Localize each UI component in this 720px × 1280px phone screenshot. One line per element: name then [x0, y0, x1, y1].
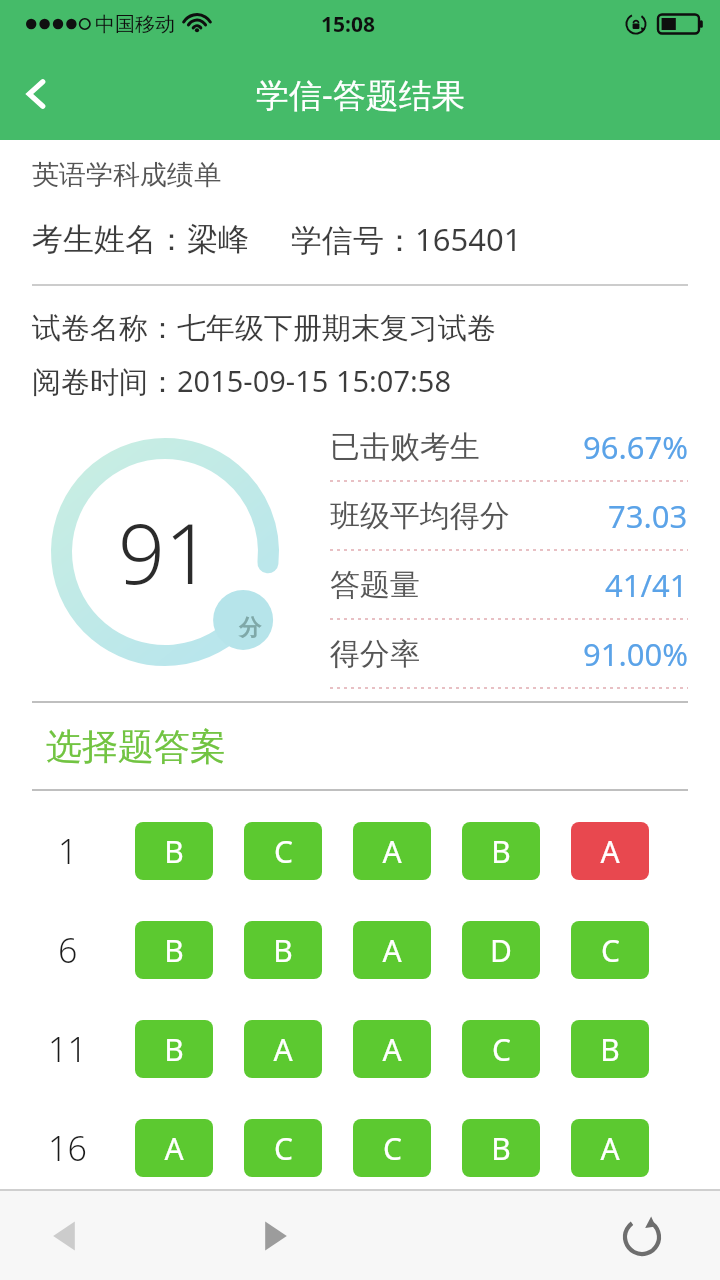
staticText: 选择题答案	[46, 724, 226, 769]
staticText: B	[164, 831, 184, 872]
staticText: A	[273, 1029, 293, 1070]
staticText: 试卷名称：七年级下册期末复习试卷	[32, 310, 496, 347]
staticText: 学信-答题结果	[256, 72, 465, 117]
staticText: 11	[48, 1026, 87, 1072]
staticText: A	[382, 930, 402, 971]
staticText: D	[490, 930, 512, 971]
staticText: 考生姓名：梁峰	[32, 220, 249, 259]
staticText: B	[600, 1029, 620, 1070]
staticText: 班级平均得分	[330, 497, 510, 535]
button[interactable]: A	[353, 822, 431, 880]
staticText: 96.67%	[583, 426, 688, 468]
button[interactable]: C	[462, 1020, 540, 1078]
button[interactable]: C	[571, 921, 649, 979]
staticText: A	[600, 831, 620, 872]
button[interactable]: A	[244, 1020, 322, 1078]
staticText: B	[491, 831, 511, 872]
staticText: A	[600, 1128, 620, 1169]
button[interactable]: C	[244, 822, 322, 880]
staticText: C	[274, 1128, 293, 1169]
staticText: 分	[239, 614, 261, 642]
staticText: 学信号：165401	[291, 218, 522, 260]
staticText: 得分率	[330, 635, 420, 673]
staticText: 阅卷时间：2015-09-15 15:07:58	[32, 361, 451, 401]
staticText: 91.00%	[583, 633, 688, 675]
staticText: 16	[48, 1125, 87, 1171]
button[interactable]: C	[353, 1119, 431, 1177]
staticText: B	[273, 930, 293, 971]
button[interactable]: D	[462, 921, 540, 979]
staticText: 41/41	[605, 564, 688, 606]
staticText: B	[164, 930, 184, 971]
staticText: B	[491, 1128, 511, 1169]
staticText: C	[274, 831, 293, 872]
button[interactable]: B	[135, 1020, 213, 1078]
button[interactable]: B	[462, 822, 540, 880]
staticText: C	[492, 1029, 511, 1070]
staticText: C	[383, 1128, 402, 1169]
button[interactable]: A	[135, 1119, 213, 1177]
staticText: A	[382, 831, 402, 872]
button[interactable]: B	[135, 921, 213, 979]
staticText: 已击败考生	[330, 428, 480, 466]
button[interactable]: B	[244, 921, 322, 979]
staticText: A	[164, 1128, 184, 1169]
staticText: C	[601, 930, 620, 971]
staticText: 73.03	[608, 495, 688, 537]
staticText: 6	[58, 927, 78, 973]
button[interactable]: Back	[0, 58, 72, 130]
button[interactable]: B	[135, 822, 213, 880]
button[interactable]: B	[571, 1020, 649, 1078]
staticText: 91	[118, 496, 212, 608]
button[interactable]: A	[353, 1020, 431, 1078]
staticText: 英语学科成绩单	[32, 158, 221, 192]
button[interactable]: 选择题答案	[0, 703, 720, 789]
staticText: A	[382, 1029, 402, 1070]
button[interactable]: Forward	[238, 1200, 310, 1272]
button[interactable]: Back	[30, 1200, 102, 1272]
staticText: 答题量	[330, 566, 420, 604]
button[interactable]: Refresh	[606, 1200, 678, 1272]
staticText: B	[164, 1029, 184, 1070]
button[interactable]: A	[571, 822, 649, 880]
staticText: 1	[58, 828, 78, 874]
staticText: 15:08	[321, 10, 375, 39]
button[interactable]: A	[353, 921, 431, 979]
button[interactable]: B	[462, 1119, 540, 1177]
button[interactable]: A	[571, 1119, 649, 1177]
staticText: 中国移动	[95, 12, 175, 37]
button[interactable]: C	[244, 1119, 322, 1177]
